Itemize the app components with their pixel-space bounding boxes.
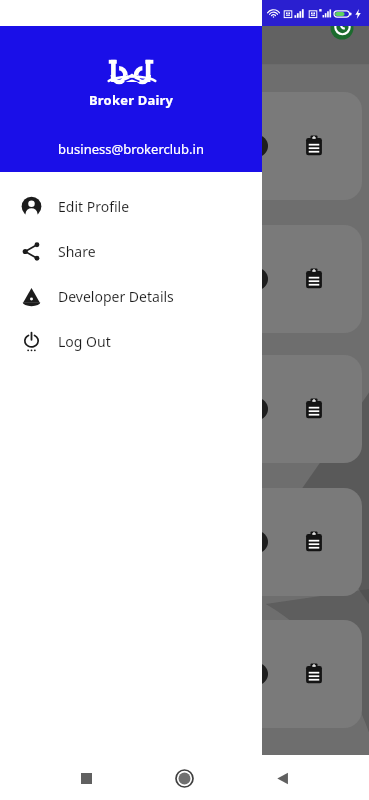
- button[interactable]: Details: [6, 355, 362, 463]
- button[interactable]: Edit Profile: [0, 184, 262, 229]
- button[interactable]: Details: [303, 268, 325, 290]
- staticText: Broker Dairy: [89, 91, 174, 109]
- button[interactable]: Recent apps: [69, 761, 103, 795]
- button[interactable]: Home: [167, 761, 201, 795]
- button[interactable]: Details: [6, 488, 362, 596]
- button[interactable]: Details: [303, 531, 325, 553]
- staticText: Edit Profile: [58, 197, 130, 216]
- button[interactable]: Details: [6, 92, 362, 200]
- staticText: business@brokerclub.in: [58, 140, 204, 158]
- button[interactable]: Developer Details: [0, 274, 262, 319]
- button[interactable]: Details: [6, 620, 362, 728]
- staticText: Log Out: [58, 332, 111, 351]
- button[interactable]: Log Out: [0, 319, 262, 364]
- button[interactable]: Details: [303, 398, 325, 420]
- staticText: Share: [58, 242, 96, 261]
- button[interactable]: Back: [265, 761, 299, 795]
- button[interactable]: Details: [303, 135, 325, 157]
- button[interactable]: WhatsApp: [330, 16, 354, 40]
- staticText: Developer Details: [58, 287, 174, 306]
- button[interactable]: Details: [303, 663, 325, 685]
- button[interactable]: Share: [0, 229, 262, 274]
- button[interactable]: Details: [6, 225, 362, 333]
